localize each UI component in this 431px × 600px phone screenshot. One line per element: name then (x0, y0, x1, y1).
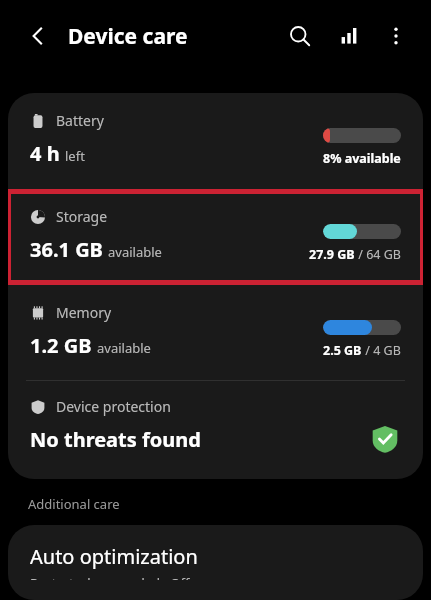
staticText: 1.2 GB (30, 332, 92, 359)
staticText: Memory (56, 303, 112, 322)
staticText: Storage (56, 207, 108, 226)
staticText: 4 h (30, 140, 60, 167)
staticText: / 64 GB (355, 246, 401, 263)
staticText: Device protection (56, 397, 171, 416)
staticText: 36.1 GB (30, 236, 103, 263)
staticText: 8% available (323, 150, 401, 167)
button[interactable]: Usage statistics (329, 15, 371, 57)
staticText: available (97, 339, 151, 357)
staticText: Auto optimization (30, 543, 198, 570)
button[interactable]: Search (279, 15, 321, 57)
button[interactable]: Auto optimization (8, 525, 423, 600)
staticText: left (65, 147, 85, 165)
button[interactable]: Memory (8, 285, 423, 381)
button[interactable]: Back (18, 16, 58, 56)
staticText: Restart when needed : Off (30, 574, 190, 580)
staticText: / 4 GB (362, 342, 401, 359)
staticText: available (108, 243, 162, 261)
button[interactable]: More options (375, 15, 417, 57)
staticText: Battery (56, 111, 104, 130)
staticText: No threats found (30, 426, 201, 453)
staticText: Device care (68, 22, 188, 51)
button[interactable]: Storage (8, 189, 423, 285)
button[interactable]: Battery (8, 93, 423, 188)
staticText: 27.9 GB (309, 246, 355, 263)
staticText: 2.5 GB (323, 342, 362, 359)
button[interactable]: Device protection (8, 381, 423, 479)
staticText: Additional care (28, 495, 120, 513)
